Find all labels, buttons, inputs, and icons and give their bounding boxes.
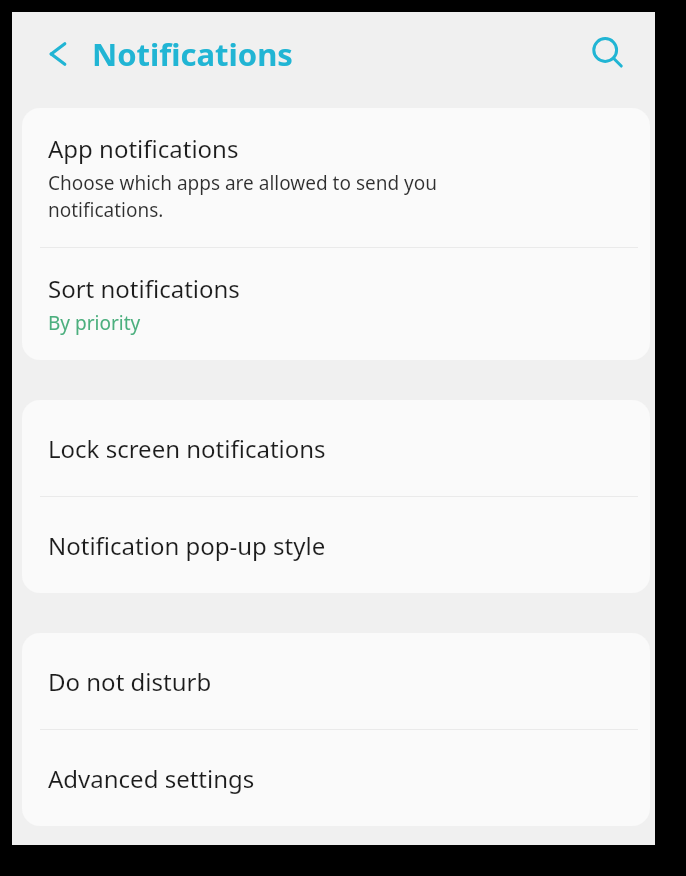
button[interactable]: App notifications bbox=[22, 108, 650, 247]
staticText: Sort notifications bbox=[48, 272, 240, 305]
button[interactable]: Search bbox=[585, 31, 631, 77]
button[interactable]: Back bbox=[38, 34, 78, 74]
staticText: App notifications bbox=[48, 132, 239, 165]
staticText: Advanced settings bbox=[48, 762, 255, 795]
staticText: Lock screen notifications bbox=[48, 432, 326, 465]
staticText: Choose which apps are allowed to send yo… bbox=[48, 170, 437, 223]
staticText: Notifications bbox=[92, 33, 293, 75]
button[interactable]: Advanced settings bbox=[22, 730, 650, 826]
staticText: By priority bbox=[48, 310, 141, 336]
button[interactable]: Do not disturb bbox=[22, 633, 650, 729]
staticText: Do not disturb bbox=[48, 665, 212, 698]
button[interactable]: Sort notifications bbox=[22, 248, 650, 360]
staticText: Notification pop-up style bbox=[48, 529, 326, 562]
button[interactable]: Lock screen notifications bbox=[22, 400, 650, 496]
button[interactable]: Notification pop-up style bbox=[22, 497, 650, 593]
